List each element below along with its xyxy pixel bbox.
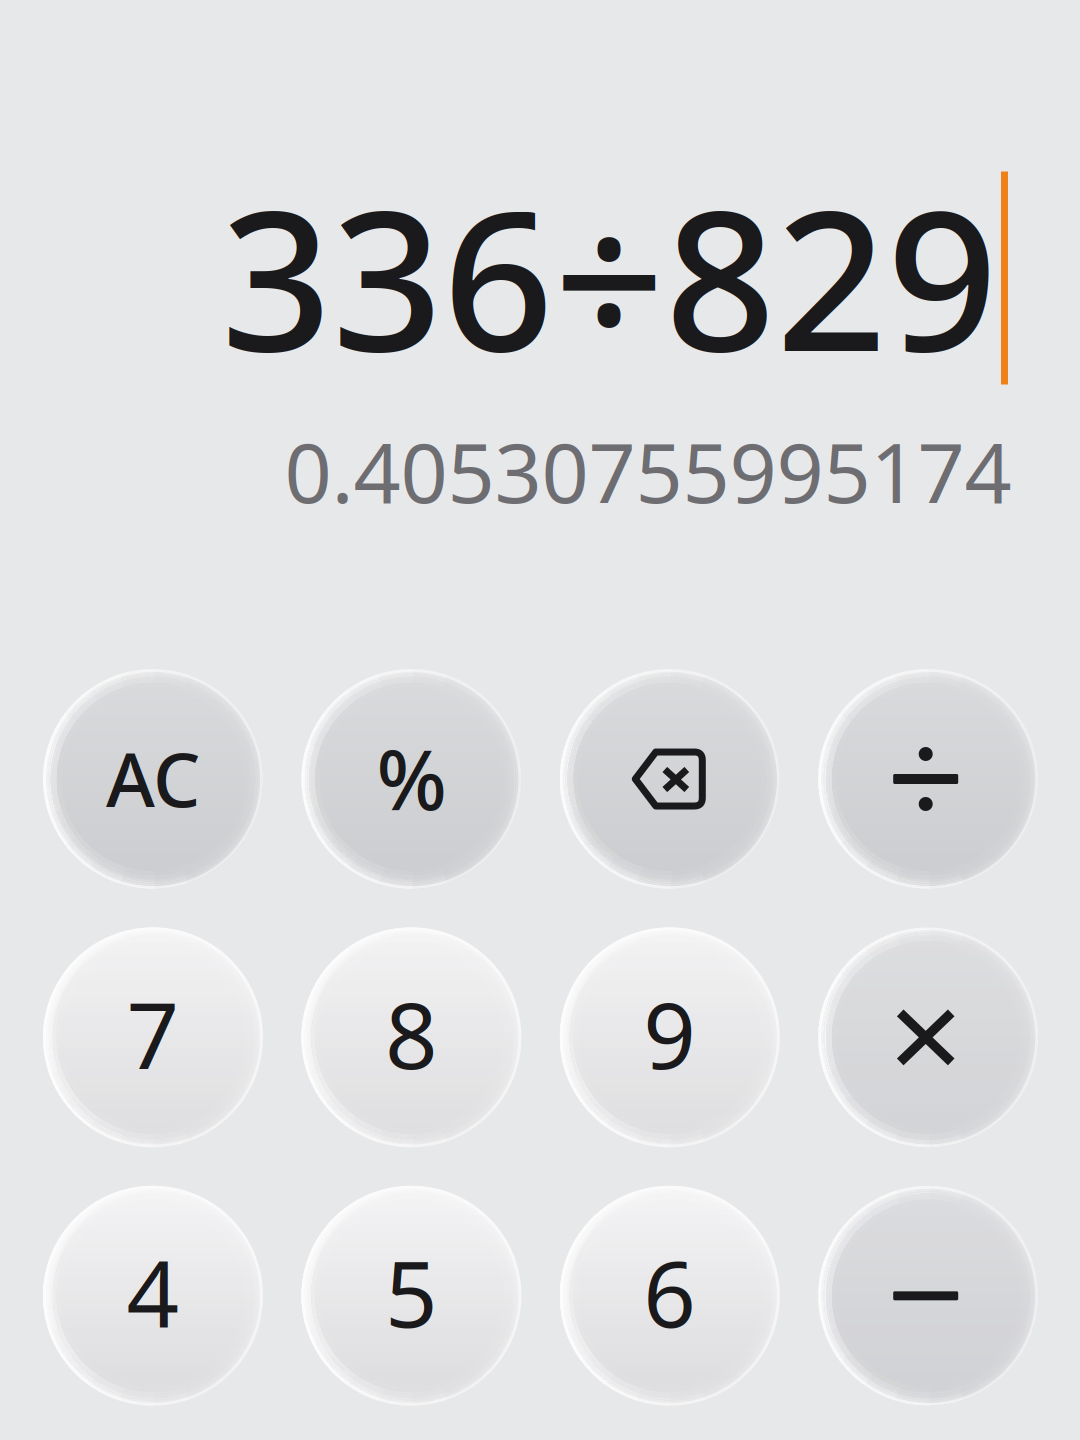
- staticText: 8: [385, 972, 438, 1094]
- staticText: AC: [106, 728, 200, 828]
- button[interactable]: Delete: [560, 669, 780, 889]
- staticText: 4: [126, 1231, 179, 1353]
- staticText: %: [376, 723, 446, 833]
- button[interactable]: 5: [301, 1186, 521, 1406]
- staticText: 7: [126, 972, 179, 1094]
- staticText: 6: [643, 1231, 696, 1353]
- button[interactable]: 8: [301, 927, 521, 1147]
- button[interactable]: All clear: [43, 669, 263, 889]
- staticText: 0.40530755995174: [284, 416, 1011, 526]
- button[interactable]: Divide: [818, 669, 1038, 889]
- button[interactable]: 9: [560, 927, 780, 1147]
- button[interactable]: 4: [43, 1186, 263, 1406]
- button[interactable]: Percent: [301, 669, 521, 889]
- button[interactable]: 6: [560, 1186, 780, 1406]
- button[interactable]: Subtract: [818, 1186, 1038, 1406]
- staticText: 9: [643, 972, 696, 1094]
- staticText: 336÷829: [221, 148, 998, 404]
- staticText: 5: [385, 1231, 438, 1353]
- button[interactable]: 7: [43, 927, 263, 1147]
- button[interactable]: Multiply: [818, 927, 1038, 1147]
